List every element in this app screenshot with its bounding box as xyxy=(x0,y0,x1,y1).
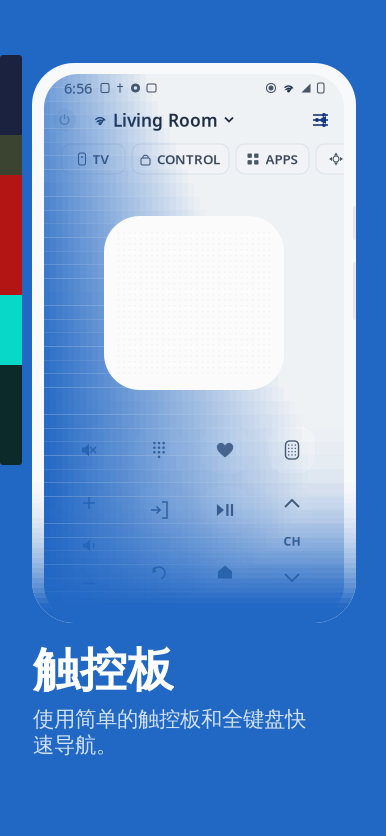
staticText: APPS xyxy=(265,150,297,168)
button[interactable]: Remote key xyxy=(202,427,248,473)
button[interactable]: APPS xyxy=(236,144,309,174)
button[interactable]: Remote key xyxy=(269,427,315,473)
staticText: 6:56 xyxy=(64,78,92,98)
button[interactable]: Channel xyxy=(273,489,311,593)
button[interactable]: TV xyxy=(62,144,125,174)
staticText: CH xyxy=(283,533,300,549)
button[interactable]: Remote key xyxy=(136,487,182,533)
staticText: TV xyxy=(92,150,108,168)
button[interactable]: Remote key xyxy=(136,427,182,473)
staticText: Living Room xyxy=(113,108,218,131)
staticText: 使用简单的触控板和全键盘快速导航。 xyxy=(33,706,306,758)
staticText: 触控板 xyxy=(33,642,174,699)
staticText: CONTROL xyxy=(157,150,220,168)
button[interactable]: Remote key xyxy=(66,427,112,473)
button[interactable]: Remote key xyxy=(136,549,182,595)
button[interactable]: Volume xyxy=(70,485,108,597)
button[interactable]: CONTROL xyxy=(132,144,229,174)
button[interactable]: Remote key xyxy=(202,487,248,533)
button[interactable]: Remote key xyxy=(202,549,248,595)
button[interactable] xyxy=(316,144,356,174)
button[interactable]: Power xyxy=(53,108,76,131)
button[interactable]: Settings xyxy=(313,113,328,127)
button[interactable]: Living Room xyxy=(113,108,233,131)
